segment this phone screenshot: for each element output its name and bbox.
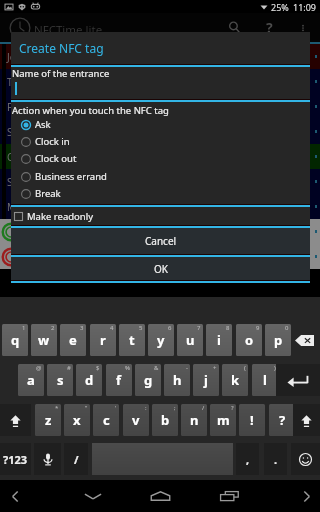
button[interactable]: : xyxy=(123,404,149,436)
button[interactable]: 0 xyxy=(265,324,291,356)
button[interactable]: ' xyxy=(93,404,119,436)
button[interactable]: & xyxy=(135,364,161,396)
staticText: ! xyxy=(250,411,254,429)
button[interactable]: . xyxy=(264,443,287,475)
button[interactable]: @ xyxy=(18,364,44,396)
button[interactable]: ? xyxy=(210,404,236,436)
staticText: u xyxy=(186,331,195,349)
button[interactable]: Clock out xyxy=(11,150,310,167)
button[interactable]: Emoji xyxy=(291,443,320,475)
staticText: * xyxy=(55,404,59,412)
button[interactable]: Help xyxy=(257,13,282,42)
staticText: p xyxy=(274,331,283,349)
button[interactable]: 5 xyxy=(119,324,145,356)
button[interactable]: Business errand xyxy=(11,168,310,185)
button[interactable]: Enter xyxy=(276,364,320,396)
button[interactable]: Hide keyboard xyxy=(78,480,108,512)
staticText: : xyxy=(145,404,147,412)
button[interactable]: Search xyxy=(221,13,247,42)
staticText: b xyxy=(161,411,170,429)
button[interactable]: 1 xyxy=(2,324,28,356)
button[interactable]: Jogging xyxy=(0,44,320,69)
button[interactable]: Fitness xyxy=(0,94,320,119)
button[interactable]: ( xyxy=(222,364,248,396)
button[interactable]: Train xyxy=(0,69,320,94)
staticText: s xyxy=(57,371,64,389)
button[interactable]: $ xyxy=(76,364,102,396)
button[interactable]: / xyxy=(181,404,207,436)
button[interactable]: , xyxy=(236,443,259,475)
button[interactable]: Make readonly xyxy=(11,207,310,226)
button[interactable]: Shift xyxy=(293,404,320,436)
staticText: . xyxy=(274,452,278,467)
button[interactable] xyxy=(0,219,320,244)
staticText: / xyxy=(202,404,205,412)
staticText: y xyxy=(157,331,165,349)
staticText: h xyxy=(173,371,182,389)
staticText: Create NFC tag xyxy=(19,40,104,56)
button[interactable]: ; xyxy=(152,404,178,436)
button[interactable]: Meeting xyxy=(0,194,320,219)
staticText: ( xyxy=(244,364,246,372)
staticText: 25% xyxy=(271,1,289,13)
button[interactable]: " xyxy=(64,404,90,436)
staticText: / xyxy=(74,452,79,467)
button[interactable]: OK xyxy=(11,257,310,281)
button[interactable]: Backspace xyxy=(289,324,320,356)
button[interactable]: % xyxy=(106,364,132,396)
staticText: a xyxy=(27,371,35,389)
staticText: ' xyxy=(115,404,117,412)
button[interactable]: 9 xyxy=(236,324,262,356)
button[interactable]: 2 xyxy=(31,324,57,356)
staticText: ?123 xyxy=(3,452,28,467)
button[interactable]: Shopping xyxy=(0,119,320,144)
button[interactable]: Recents xyxy=(217,480,241,512)
staticText: 5 xyxy=(139,324,143,332)
staticText: r xyxy=(100,331,106,349)
button[interactable]: Back xyxy=(0,480,30,512)
staticText: n xyxy=(190,411,199,429)
button[interactable]: + xyxy=(193,364,219,396)
button[interactable]: ?123 xyxy=(0,443,31,475)
button[interactable]: / xyxy=(64,443,88,475)
button[interactable]: Ask xyxy=(11,116,310,133)
button[interactable]: * xyxy=(35,404,61,436)
button[interactable]: Shift xyxy=(0,404,31,436)
staticText: 0 xyxy=(285,324,289,332)
staticText: Action when you touch the NFC tag xyxy=(12,104,169,116)
button[interactable]: ! xyxy=(239,404,265,436)
staticText: q xyxy=(11,331,20,349)
staticText: 1 xyxy=(22,324,26,332)
button[interactable]: Voice input xyxy=(34,443,61,475)
button[interactable] xyxy=(0,244,320,269)
staticText: $ xyxy=(96,364,100,372)
staticText: 9 xyxy=(256,324,260,332)
button[interactable]: ? xyxy=(269,404,295,436)
button[interactable]: Coffee xyxy=(0,144,320,169)
button[interactable]: ) xyxy=(252,364,278,396)
button[interactable]: 7 xyxy=(177,324,203,356)
staticText: x xyxy=(73,411,81,429)
button[interactable]: 4 xyxy=(90,324,116,356)
button[interactable]: Cancel xyxy=(11,228,310,254)
button[interactable]: Clock in xyxy=(11,133,310,150)
button[interactable]: More options xyxy=(292,13,313,42)
staticText: Train xyxy=(7,75,31,89)
staticText: d xyxy=(85,371,94,389)
staticText: % xyxy=(125,364,130,372)
staticText: i xyxy=(217,331,221,349)
staticText: t xyxy=(129,331,135,349)
button[interactable]: Sleep xyxy=(0,169,320,194)
staticText: 6 xyxy=(168,324,172,332)
button[interactable]: # xyxy=(47,364,73,396)
button[interactable]: 8 xyxy=(206,324,232,356)
button[interactable]: 6 xyxy=(148,324,174,356)
button[interactable]: - xyxy=(164,364,190,396)
button[interactable]: Forward xyxy=(294,480,320,512)
staticText: Jogging xyxy=(7,50,43,64)
staticText: k xyxy=(231,371,240,389)
button[interactable]: Home xyxy=(149,480,172,512)
button[interactable]: Break xyxy=(11,185,310,202)
button[interactable]: 3 xyxy=(60,324,86,356)
